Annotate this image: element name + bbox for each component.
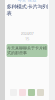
staticText: 2024/07 [20, 31, 33, 36]
staticText: 多种模式·卡片与列表 [6, 3, 47, 16]
staticText: 15 [25, 36, 29, 41]
staticText: 今天 18:32 [18, 0, 36, 3]
staticText: 今天来聊聊关于卡片模式的那些事 [7, 46, 47, 55]
